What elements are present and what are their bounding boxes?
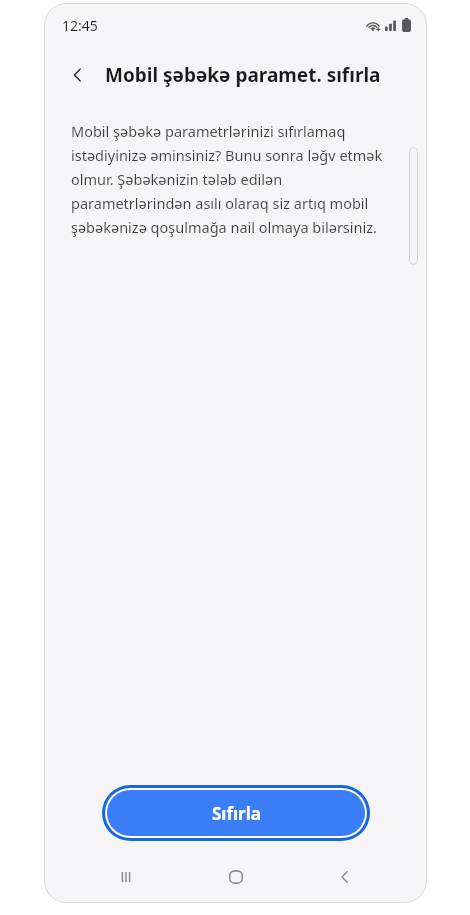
- button[interactable]: Back: [60, 57, 96, 93]
- staticText: 12:45: [62, 16, 98, 35]
- button[interactable]: Back: [318, 850, 372, 903]
- button[interactable]: Recents: [99, 850, 153, 903]
- staticText: Sıfırla: [212, 802, 261, 825]
- staticText: Mobil şəbəkə parametrlərinizi sıfırlamaq…: [71, 121, 395, 237]
- staticText: Mobil şəbəkə paramet. sıfırla: [105, 62, 381, 88]
- button[interactable]: Home: [209, 850, 263, 903]
- button[interactable]: Sıfırla: [102, 785, 370, 841]
